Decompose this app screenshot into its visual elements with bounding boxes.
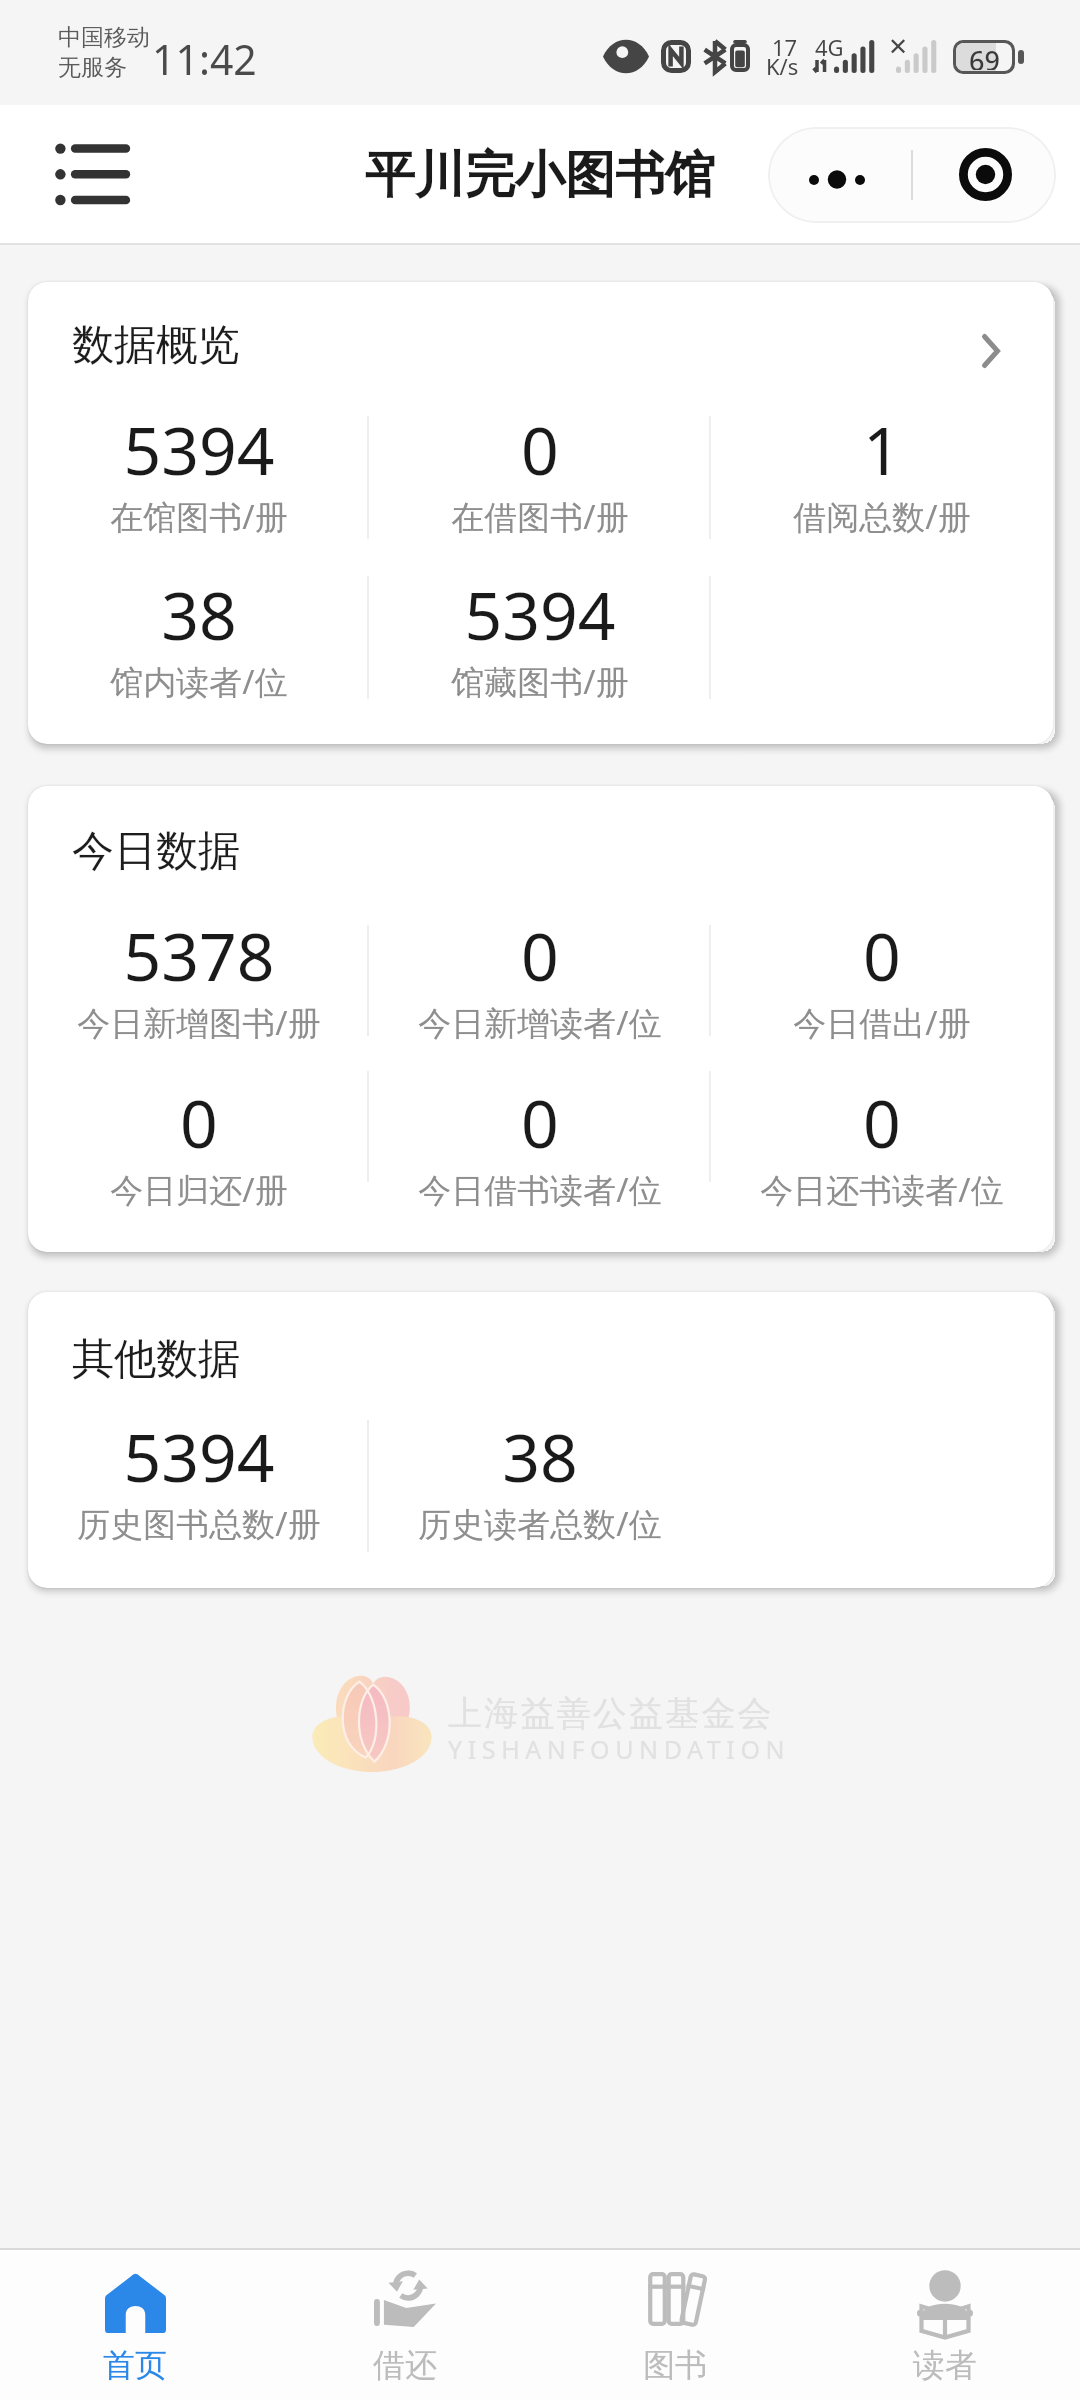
staticText: 69 [969, 43, 1000, 70]
staticText: 其他数据 [72, 1333, 240, 1386]
staticText: 11:42 [152, 31, 257, 87]
staticText: 读者 [913, 2345, 977, 2385]
staticText: 今日借书读者/位 [418, 1167, 662, 1212]
staticText: 0 [521, 404, 559, 494]
staticText: 今日数据 [72, 825, 240, 878]
button[interactable]: Menu and close [768, 127, 1056, 223]
staticText: 1 [863, 404, 901, 494]
staticText: 在馆图书/册 [110, 494, 288, 539]
staticText: 馆内读者/位 [110, 659, 288, 704]
staticText: 借阅总数/册 [793, 494, 971, 539]
button[interactable]: 数据概览 [28, 282, 1053, 744]
staticText: 17 [772, 32, 798, 62]
staticText: 首页 [103, 2345, 167, 2385]
button[interactable]: 其他数据 [28, 1292, 1053, 1588]
button[interactable]: 首页 [0, 2250, 270, 2400]
staticText: 今日还书读者/位 [760, 1167, 1004, 1212]
button[interactable]: 读者 [810, 2250, 1080, 2400]
staticText: 图书 [643, 2345, 707, 2385]
button[interactable]: View details [957, 316, 1017, 386]
staticText: 0 [521, 910, 559, 1000]
staticText: 馆藏图书/册 [451, 659, 629, 704]
staticText: 5394 [464, 569, 616, 659]
staticText: 今日新增图书/册 [77, 1000, 321, 1045]
staticText: 38 [161, 569, 237, 659]
staticText: K/s [766, 51, 799, 81]
button[interactable]: 今日数据 [28, 786, 1053, 1252]
staticText: 4G [815, 32, 844, 62]
staticText: ✕ [888, 33, 909, 61]
staticText: 历史读者总数/位 [418, 1501, 662, 1546]
staticText: 数据概览 [72, 319, 240, 372]
button[interactable]: 借还 [270, 2250, 540, 2400]
staticText: 在借图书/册 [451, 494, 629, 539]
staticText: 上海益善公益基金会 [448, 1692, 774, 1735]
staticText: 中国移动 [58, 23, 150, 52]
staticText: 今日归还/册 [110, 1167, 288, 1212]
staticText: 历史图书总数/册 [77, 1501, 321, 1546]
staticText: 今日借出/册 [793, 1000, 971, 1045]
staticText: 0 [180, 1077, 218, 1167]
staticText: 38 [502, 1411, 578, 1501]
button[interactable]: Menu [35, 140, 145, 208]
staticText: 5378 [123, 910, 275, 1000]
staticText: 5394 [123, 404, 275, 494]
staticText: 平川完小图书馆 [365, 144, 715, 207]
staticText: 今日新增读者/位 [418, 1000, 662, 1045]
staticText: 0 [863, 910, 901, 1000]
staticText: 无服务 [58, 53, 127, 82]
staticText: 0 [863, 1077, 901, 1167]
staticText: 0 [521, 1077, 559, 1167]
staticText: 借还 [373, 2345, 437, 2385]
button[interactable]: 图书 [540, 2250, 810, 2400]
staticText: 5394 [123, 1411, 275, 1501]
staticText: YISHANFOUNDATION [448, 1732, 791, 1766]
